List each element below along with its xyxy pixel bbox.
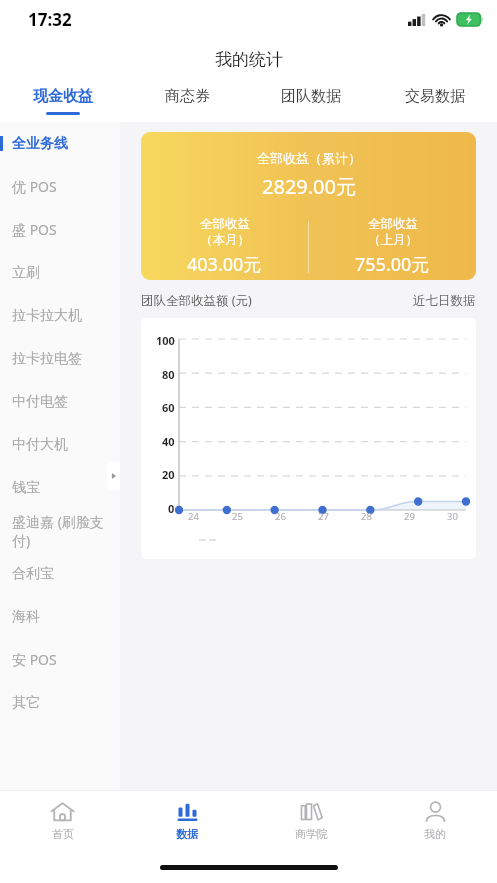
staticText: 28 <box>361 510 372 523</box>
staticText: 数据 <box>176 827 198 841</box>
staticText: （上月） <box>368 232 418 248</box>
button[interactable]: 盛 POS <box>0 208 120 251</box>
staticText: 中付电签 <box>12 393 68 411</box>
staticText: 755.00元 <box>355 252 430 277</box>
staticText: 盛 POS <box>12 220 57 239</box>
button[interactable]: 中付电签 <box>0 380 120 423</box>
staticText: 我的统计 <box>215 49 283 70</box>
staticText: 立刷 <box>12 264 40 282</box>
staticText: 我的 <box>424 827 446 841</box>
staticText: 26 <box>275 510 286 523</box>
staticText: 首页 <box>52 827 74 841</box>
staticText: 40 <box>162 434 175 449</box>
button[interactable]: 钱宝 <box>0 466 120 509</box>
staticText: 中付大机 <box>12 436 68 454</box>
staticText: 拉卡拉电签 <box>12 350 82 368</box>
staticText: 25 <box>232 510 243 523</box>
staticText: 60 <box>162 400 175 415</box>
staticText: 全业务线 <box>12 135 68 153</box>
staticText: 0 <box>168 501 175 516</box>
button[interactable]: 数据 <box>125 791 249 851</box>
staticText: 29 <box>404 510 415 523</box>
staticText: 20 <box>162 467 175 482</box>
button[interactable]: 交易数据 <box>373 80 497 122</box>
staticText: 安 POS <box>12 650 57 669</box>
button[interactable]: 我的 <box>373 791 497 851</box>
button[interactable]: 全业务线 <box>0 122 120 165</box>
button[interactable]: 商学院 <box>249 791 373 851</box>
staticText: 优 POS <box>12 177 57 196</box>
staticText: 全部收益 <box>200 216 250 232</box>
staticText: 商态券 <box>165 87 210 106</box>
button[interactable]: 团队数据 <box>249 80 373 122</box>
staticText: 钱宝 <box>12 479 40 497</box>
button[interactable]: 海科 <box>0 595 120 638</box>
staticText: 100 <box>156 333 175 348</box>
button[interactable]: 盛迪嘉 (刷脸支付) <box>0 509 120 552</box>
button[interactable]: 其它 <box>0 681 120 724</box>
staticText: 交易数据 <box>405 87 465 106</box>
staticText: 商学院 <box>295 827 328 841</box>
button[interactable]: 安 POS <box>0 638 120 681</box>
staticText: 全部收益（累计） <box>257 150 361 166</box>
staticText: 403.00元 <box>187 252 262 277</box>
button[interactable]: Expand sidebar <box>107 462 120 490</box>
button[interactable]: 中付大机 <box>0 423 120 466</box>
button[interactable]: 合利宝 <box>0 552 120 595</box>
staticText: 其它 <box>12 694 40 712</box>
staticText: 全部收益 <box>368 216 418 232</box>
staticText: 团队数据 <box>281 87 341 106</box>
staticText: 拉卡拉大机 <box>12 307 82 325</box>
staticText: 30 <box>447 510 458 523</box>
button[interactable]: 现金收益 <box>0 80 125 122</box>
button[interactable]: 优 POS <box>0 165 120 208</box>
button[interactable]: 首页 <box>0 791 125 851</box>
staticText: 合利宝 <box>12 565 54 583</box>
staticText: 24 <box>188 510 199 523</box>
staticText: 27 <box>318 510 329 523</box>
staticText: 80 <box>162 367 175 382</box>
staticText: 团队全部收益额 (元) <box>141 292 252 309</box>
staticText: 2829.00元 <box>262 173 356 200</box>
button[interactable]: 全部收益（累计） <box>141 132 476 280</box>
staticText: 盛迪嘉 (刷脸支付) <box>12 512 120 550</box>
button[interactable]: 商态券 <box>125 80 249 122</box>
button[interactable]: 拉卡拉电签 <box>0 337 120 380</box>
staticText: 现金收益 <box>33 87 93 106</box>
staticText: （本月） <box>200 232 250 248</box>
button[interactable]: 拉卡拉大机 <box>0 294 120 337</box>
button[interactable]: 立刷 <box>0 251 120 294</box>
staticText: 17:32 <box>28 8 72 31</box>
staticText: 海科 <box>12 608 40 626</box>
staticText: 近七日数据 <box>413 293 476 309</box>
